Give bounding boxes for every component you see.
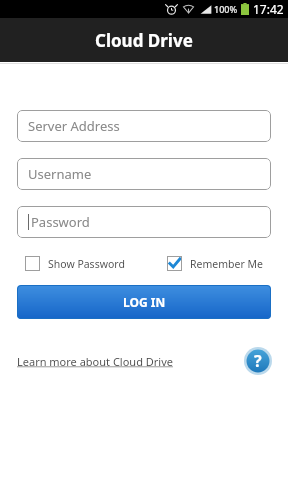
staticText: 17:42 xyxy=(253,1,284,17)
staticText: Server Address xyxy=(28,117,120,135)
button[interactable]: Server Address xyxy=(17,110,271,142)
button[interactable]: LOG IN xyxy=(17,285,271,319)
staticText: ? xyxy=(254,350,262,372)
staticText: Remember Me xyxy=(190,257,263,271)
button[interactable]: Show Password xyxy=(25,256,125,271)
staticText: Learn more about Cloud Drive xyxy=(17,354,173,369)
button[interactable]: Learn more about Cloud Drive xyxy=(17,354,173,369)
button[interactable]: Password xyxy=(17,206,271,238)
staticText: Show Password xyxy=(48,257,125,271)
staticText: Password xyxy=(31,213,90,231)
button[interactable]: Remember Me xyxy=(167,256,263,271)
staticText: 100% xyxy=(214,3,238,15)
staticText: Cloud Drive xyxy=(95,29,193,52)
staticText: LOG IN xyxy=(123,294,166,310)
button[interactable]: Username xyxy=(17,158,271,190)
staticText: Username xyxy=(28,165,92,183)
button[interactable]: Help xyxy=(244,347,272,375)
